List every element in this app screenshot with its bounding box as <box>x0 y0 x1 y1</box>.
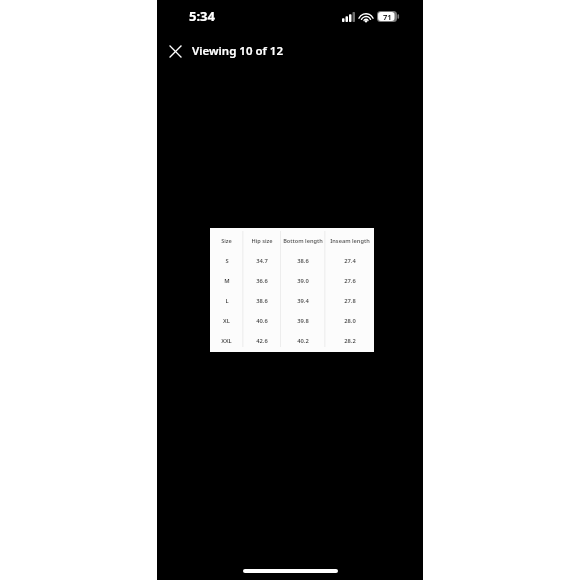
staticText: 27.6 <box>344 277 356 285</box>
staticText: 42.6 <box>256 337 268 345</box>
staticText: Bottom length <box>283 237 323 245</box>
staticText: 34.7 <box>256 257 268 265</box>
staticText: Viewing 10 of 12 <box>192 43 283 59</box>
staticText: 39.4 <box>297 297 309 305</box>
staticText: S <box>225 257 229 265</box>
staticText: L <box>225 297 229 305</box>
staticText: 71 <box>383 12 392 22</box>
staticText: Inseam length <box>330 237 370 245</box>
staticText: M <box>224 277 230 285</box>
staticText: 5:34 <box>189 7 215 25</box>
staticText: 40.2 <box>297 337 309 345</box>
staticText: 28.0 <box>344 317 356 325</box>
staticText: 38.6 <box>297 257 309 265</box>
staticText: 36.6 <box>256 277 268 285</box>
staticText: 39.0 <box>297 277 309 285</box>
staticText: XL <box>223 317 230 325</box>
staticText: Size <box>221 237 232 245</box>
button[interactable]: Close <box>162 38 188 64</box>
staticText: 40.6 <box>256 317 268 325</box>
staticText: 27.4 <box>344 257 356 265</box>
staticText: 39.8 <box>297 317 309 325</box>
staticText: XXL <box>221 337 232 345</box>
staticText: Hip size <box>251 237 273 245</box>
staticText: 27.8 <box>344 297 356 305</box>
staticText: 28.2 <box>344 337 356 345</box>
staticText: 38.6 <box>256 297 268 305</box>
